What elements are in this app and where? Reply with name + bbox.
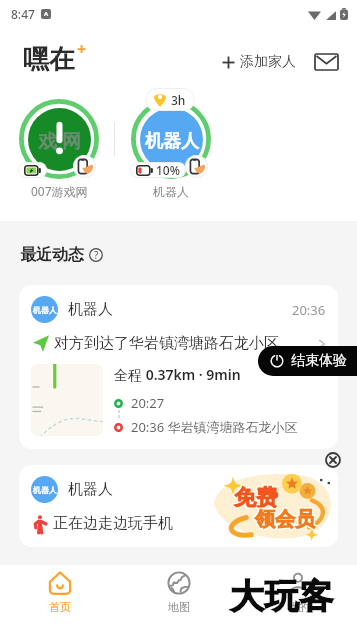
staticText: 对方到达了华岩镇湾塘路石龙小区 — [54, 334, 318, 353]
staticText: 机器人 — [68, 300, 113, 319]
staticText: 最近动态 — [20, 245, 84, 265]
staticText: 戏 网 — [38, 128, 81, 154]
button[interactable]: 我的 — [238, 565, 357, 634]
staticText: 20:36 华岩镇湾塘路石龙小区 — [131, 418, 298, 436]
staticText: 免费 — [233, 483, 277, 511]
staticText: 领会员 — [256, 508, 316, 533]
staticText: A — [44, 10, 49, 18]
button[interactable]: Close — [325, 452, 341, 468]
staticText: 结束体验 — [291, 352, 347, 370]
staticText: 20:36 — [292, 301, 326, 319]
button[interactable]: 机器人 — [19, 285, 338, 449]
staticText: 机器人 — [68, 480, 113, 499]
staticText: 正在边走边玩手机 — [53, 514, 173, 533]
staticText: 3h — [171, 92, 186, 108]
staticText: 10% — [156, 162, 180, 178]
button[interactable]: 首页 — [0, 565, 119, 634]
staticText: 机器人 — [153, 184, 189, 199]
staticText: 20:28 — [292, 481, 326, 499]
staticText: 我的 — [287, 600, 309, 614]
staticText: 嘿在 — [23, 43, 75, 76]
staticText: 机器人 — [33, 485, 57, 495]
button[interactable]: 机器人 — [125, 86, 217, 199]
staticText: 007游戏网 — [31, 183, 88, 199]
staticText: 大玩客 — [230, 575, 334, 618]
button[interactable]: Help — [89, 248, 103, 262]
button[interactable]: 结束体验 — [258, 346, 357, 376]
staticText: 机器人 — [33, 305, 57, 315]
staticText: ? — [94, 248, 99, 262]
button[interactable]: 机器人 — [19, 465, 338, 547]
staticText: 领会员 — [256, 506, 316, 531]
staticText: 领会员 — [255, 507, 315, 532]
staticText: 免费 — [234, 484, 278, 512]
staticText: 20:27 — [131, 394, 165, 412]
button[interactable]: 地图 — [119, 565, 238, 634]
staticText: 免费 — [235, 483, 279, 511]
staticText: 免费 — [235, 485, 279, 513]
staticText: 领会员 — [254, 508, 314, 533]
staticText: 地图 — [168, 600, 190, 614]
staticText: 首页 — [49, 600, 71, 614]
button[interactable]: Messages — [313, 52, 340, 72]
staticText: 机器人 — [145, 130, 199, 153]
staticText: 领会员 — [254, 506, 314, 531]
button[interactable]: 添加家人 — [220, 47, 298, 77]
staticText: + — [77, 38, 87, 60]
button[interactable]: Free membership — [211, 470, 337, 542]
staticText: 8:47 — [11, 6, 35, 22]
staticText: 添加家人 — [240, 53, 296, 71]
button[interactable]: 戏 网 — [13, 86, 105, 199]
staticText: 免费 — [233, 485, 277, 513]
staticText: 全程 0.37km · 9min — [114, 365, 241, 384]
